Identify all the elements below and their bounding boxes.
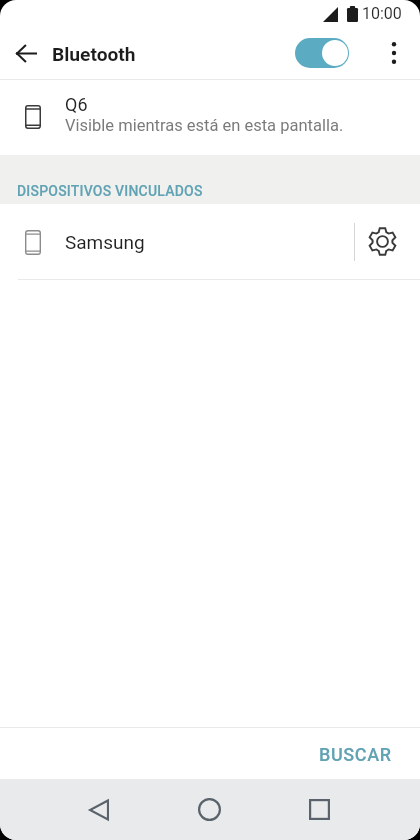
staticText: Samsung (65, 231, 145, 253)
button[interactable]: More options (374, 29, 414, 77)
button[interactable]: Samsung (0, 204, 358, 279)
button[interactable]: Recent apps (279, 779, 360, 840)
staticText: Visible mientras está en esta pantalla. (65, 116, 344, 135)
staticText: BUSCAR (319, 744, 392, 765)
button[interactable]: BUSCAR (304, 732, 406, 776)
staticText: DISPOSITIVOS VINCULADOS (17, 183, 203, 199)
staticText: Bluetooth (52, 43, 136, 66)
button[interactable]: Home (169, 779, 250, 840)
button[interactable]: Back (2, 29, 50, 77)
button[interactable]: Device settings (353, 204, 412, 279)
button[interactable]: Back (58, 779, 139, 840)
button[interactable]: Bluetooth on/off (287, 32, 357, 74)
staticText: 10:00 (362, 4, 402, 23)
staticText: Q6 (65, 94, 88, 115)
button[interactable]: Q6 (0, 80, 420, 155)
